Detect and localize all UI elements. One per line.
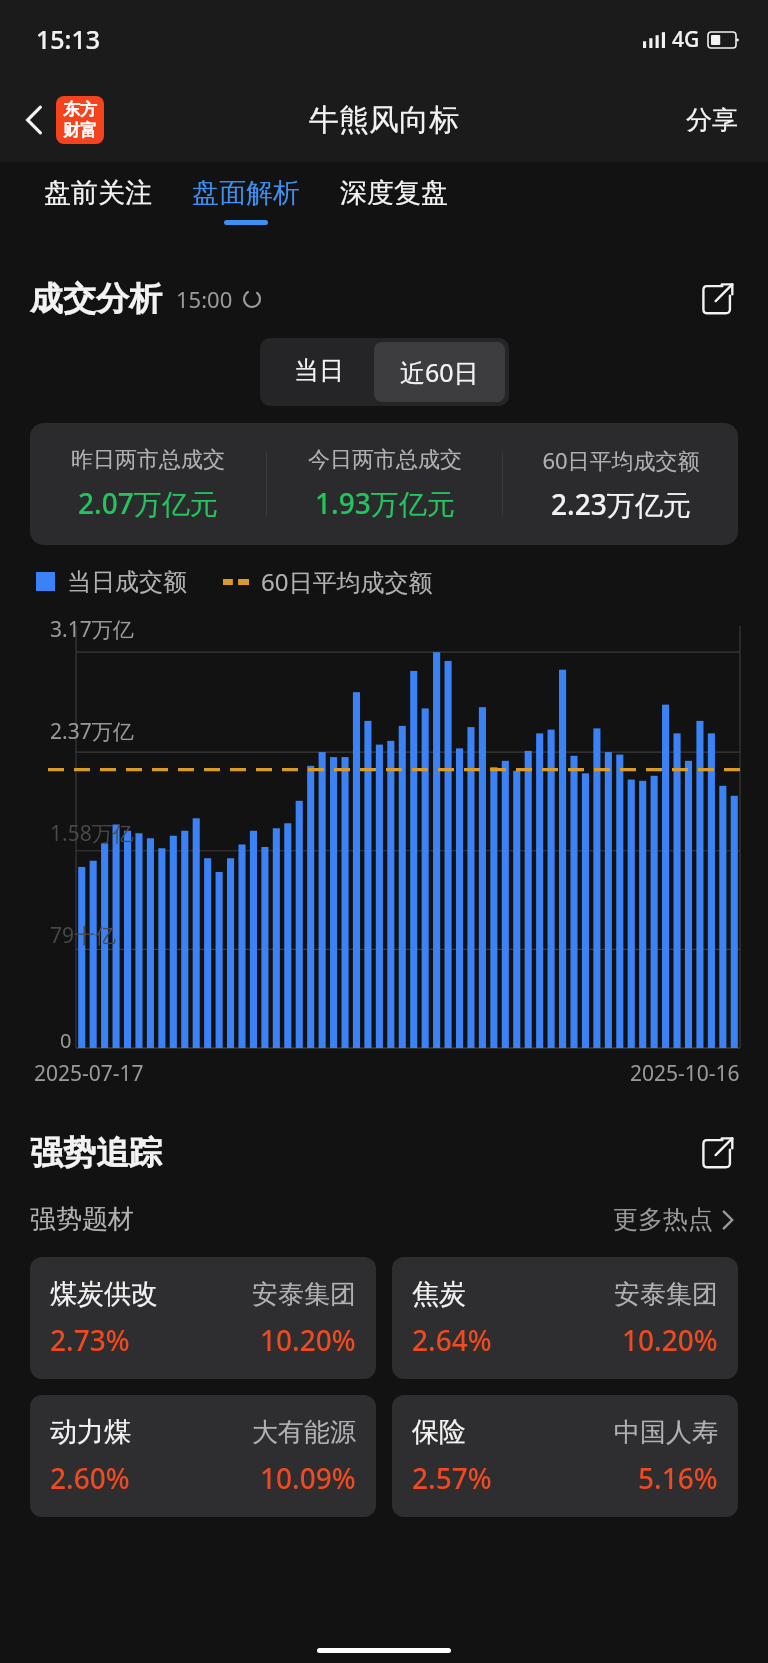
staticText: 当日成交额 bbox=[67, 567, 187, 597]
button[interactable]: 分享 bbox=[678, 96, 746, 145]
staticText: 1.58万亿 bbox=[50, 819, 134, 848]
staticText: 15:00 bbox=[176, 284, 233, 314]
staticText: 动力煤 bbox=[50, 1415, 131, 1449]
staticText: 15:13 bbox=[36, 22, 101, 56]
staticText: 5.16% bbox=[638, 1459, 718, 1497]
staticText: 10.20% bbox=[260, 1321, 356, 1359]
staticText: 安泰集团 bbox=[614, 1278, 718, 1311]
button[interactable]: Back bbox=[18, 88, 110, 152]
staticText: 东方 bbox=[63, 99, 97, 120]
staticText: 分享 bbox=[686, 104, 738, 137]
staticText: 10.09% bbox=[260, 1459, 356, 1497]
button[interactable]: Open bbox=[694, 1130, 740, 1176]
button[interactable]: 盘面解析 bbox=[180, 166, 312, 235]
staticText: 3.17万亿 bbox=[50, 615, 134, 644]
staticText: 0 bbox=[60, 1027, 72, 1054]
staticText: 强势追踪 bbox=[30, 1132, 162, 1174]
staticText: 焦炭 bbox=[412, 1277, 466, 1311]
staticText: 60日平均成交额 bbox=[261, 565, 433, 598]
staticText: 强势题材 bbox=[30, 1203, 134, 1236]
staticText: 今日两市总成交 bbox=[308, 446, 462, 474]
button[interactable]: 盘前关注 bbox=[32, 166, 164, 235]
staticText: 2025-10-16 bbox=[630, 1059, 740, 1088]
staticText: 4G bbox=[672, 25, 700, 54]
staticText: 当日 bbox=[294, 355, 344, 386]
staticText: 昨日两市总成交 bbox=[71, 446, 225, 474]
staticText: 10.20% bbox=[622, 1321, 718, 1359]
staticText: 牛熊风向标 bbox=[309, 101, 459, 139]
button[interactable]: 动力煤 bbox=[30, 1395, 376, 1517]
button[interactable]: 当日 bbox=[264, 342, 374, 399]
staticText: 2.57% bbox=[412, 1459, 492, 1497]
staticText: 成交分析 bbox=[30, 278, 162, 320]
staticText: 煤炭供改 bbox=[50, 1277, 158, 1311]
staticText: 2025-07-17 bbox=[34, 1059, 144, 1088]
button[interactable]: 保险 bbox=[392, 1395, 738, 1517]
staticText: 1.93万亿元 bbox=[315, 484, 455, 522]
staticText: 保险 bbox=[412, 1415, 466, 1449]
staticText: 79十亿 bbox=[50, 921, 117, 950]
button[interactable]: 煤炭供改 bbox=[30, 1257, 376, 1379]
button[interactable]: 深度复盘 bbox=[328, 166, 460, 235]
staticText: 2.07万亿元 bbox=[78, 484, 218, 522]
staticText: 大有能源 bbox=[252, 1416, 356, 1449]
staticText: 深度复盘 bbox=[340, 176, 448, 210]
staticText: 2.64% bbox=[412, 1321, 492, 1359]
staticText: 盘前关注 bbox=[44, 176, 152, 210]
button[interactable]: 更多热点 bbox=[607, 1198, 740, 1241]
staticText: 2.60% bbox=[50, 1459, 130, 1497]
button[interactable]: Open bbox=[694, 276, 740, 322]
staticText: 2.37万亿 bbox=[50, 717, 134, 746]
staticText: 中国人寿 bbox=[614, 1416, 718, 1449]
staticText: 60日平均成交额 bbox=[542, 445, 700, 475]
staticText: 更多热点 bbox=[613, 1204, 713, 1235]
staticText: 近60日 bbox=[400, 355, 479, 389]
button[interactable]: 近60日 bbox=[374, 342, 505, 402]
staticText: 财富 bbox=[63, 120, 97, 141]
staticText: 2.23万亿元 bbox=[551, 485, 691, 523]
staticText: 2.73% bbox=[50, 1321, 130, 1359]
staticText: 安泰集团 bbox=[252, 1278, 356, 1311]
staticText: 盘面解析 bbox=[192, 176, 300, 210]
button[interactable]: 焦炭 bbox=[392, 1257, 738, 1379]
